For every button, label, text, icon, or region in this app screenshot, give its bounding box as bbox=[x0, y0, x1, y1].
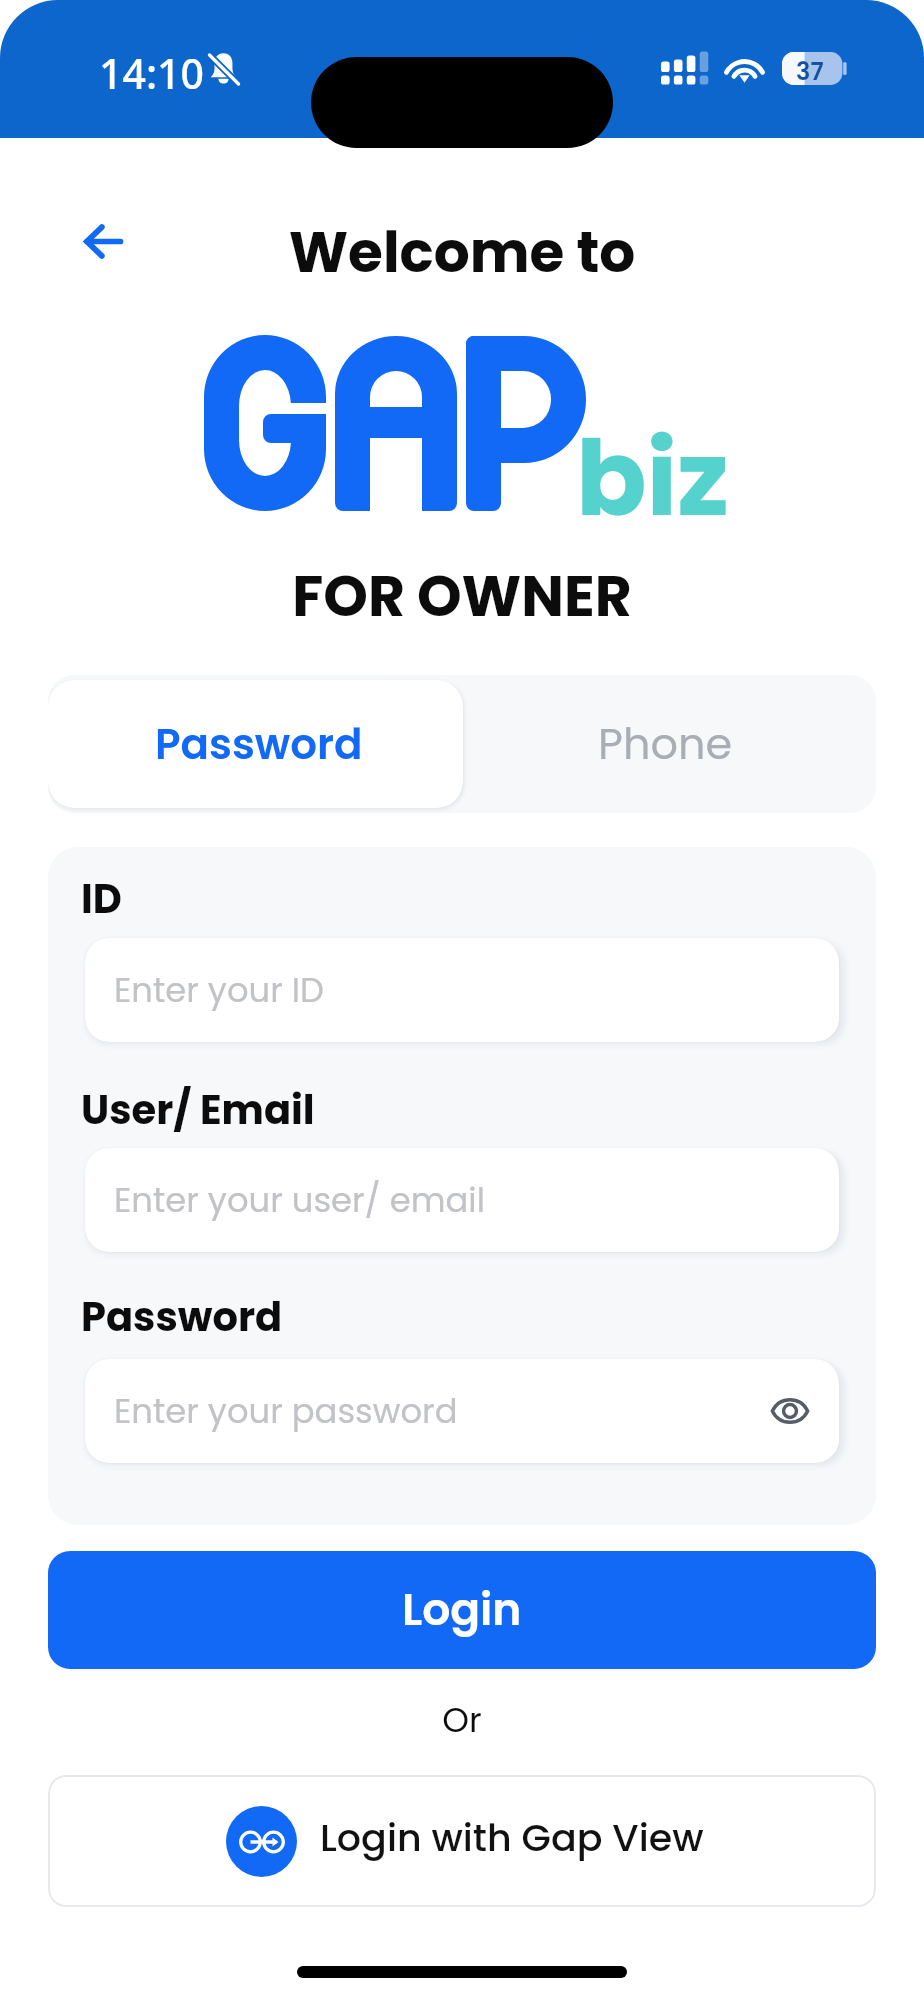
staticText: ID bbox=[81, 871, 122, 927]
staticText: Phone bbox=[598, 714, 733, 774]
staticText: User/ Email bbox=[81, 1082, 315, 1138]
staticText: Enter your ID bbox=[114, 967, 324, 1014]
staticText: Enter your user/ email bbox=[114, 1177, 485, 1224]
staticText: 14:10 bbox=[99, 45, 204, 101]
staticText: Login bbox=[402, 1579, 522, 1641]
button[interactable]: Enter your password bbox=[85, 1359, 839, 1463]
button[interactable]: Show password bbox=[763, 1384, 817, 1438]
staticText: Login with Gap View bbox=[320, 1811, 704, 1864]
staticText: Welcome to bbox=[0, 213, 924, 292]
button[interactable]: Enter your ID bbox=[85, 938, 839, 1042]
button[interactable]: Back bbox=[62, 200, 144, 282]
staticText: Password bbox=[155, 715, 363, 774]
staticText: FOR OWNER bbox=[0, 556, 924, 636]
staticText: biz bbox=[576, 406, 729, 552]
staticText: 37 bbox=[796, 55, 824, 88]
staticText: Password bbox=[81, 1289, 283, 1345]
button[interactable]: Password bbox=[48, 680, 463, 808]
button[interactable]: Phone bbox=[463, 675, 876, 813]
button[interactable]: Enter your user/ email bbox=[85, 1148, 839, 1252]
button[interactable]: Login bbox=[48, 1551, 876, 1669]
staticText: Enter your password bbox=[114, 1388, 458, 1435]
staticText: Or bbox=[0, 1696, 924, 1744]
button[interactable]: Login with Gap View bbox=[48, 1775, 876, 1907]
